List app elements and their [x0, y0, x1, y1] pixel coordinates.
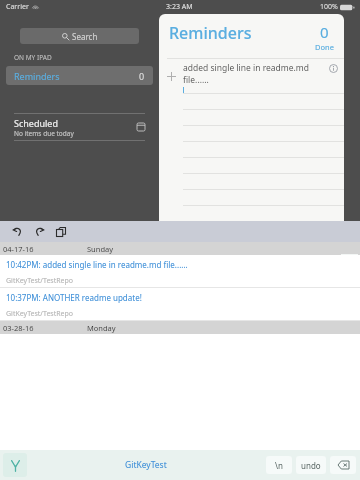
staticText: No items due today: [14, 129, 74, 138]
staticText: 100%: [320, 2, 338, 12]
button[interactable]: undo: [296, 456, 326, 474]
other: Add reminder: [167, 72, 176, 81]
staticText: GitKeyTest: [125, 459, 167, 471]
button[interactable]: Reminders: [6, 66, 153, 85]
staticText: 10:42PM: added single line in readme.md …: [6, 259, 188, 270]
staticText: 03-28-16: [3, 323, 34, 333]
staticText: ON MY IPAD: [14, 53, 52, 62]
other: Scheduled: [137, 123, 145, 131]
button[interactable]: Search: [20, 28, 139, 44]
staticText: Sunday: [87, 244, 114, 254]
button[interactable]: \n: [266, 456, 292, 474]
button[interactable]: Redo: [28, 221, 50, 242]
staticText: 3:23 AM: [166, 2, 193, 12]
button[interactable]: Backspace: [330, 456, 356, 474]
staticText: Carrier: [6, 2, 29, 12]
staticText: undo: [301, 460, 321, 471]
staticText: Done: [315, 42, 334, 52]
staticText: 10:37PM: ANOTHER readme update!: [6, 292, 142, 303]
button[interactable]: 10:42PM: added single line in readme.md …: [0, 255, 360, 274]
button[interactable]: Refresh: [341, 254, 358, 267]
staticText: Search: [72, 31, 98, 42]
staticText: 04-17-16: [3, 244, 34, 254]
staticText: Scheduled: [14, 117, 58, 129]
staticText: Monday: [87, 323, 116, 333]
button[interactable]: 10:37PM: ANOTHER readme update!: [0, 288, 360, 307]
staticText: GitKeyTest/TestRepo: [6, 276, 74, 286]
staticText: Reminders: [14, 70, 60, 82]
button[interactable]: GitKey: [3, 453, 27, 477]
staticText: Reminders: [169, 22, 252, 44]
staticText: 0: [320, 22, 329, 42]
button[interactable]: Scheduled: [0, 114, 159, 140]
staticText: file......: [183, 74, 209, 86]
button[interactable]: Copy: [50, 221, 72, 242]
other: Info: [329, 64, 338, 73]
staticText: GitKeyTest/TestRepo: [6, 309, 74, 319]
button[interactable]: Undo: [6, 221, 28, 242]
staticText: 0: [139, 70, 145, 82]
staticText: \n: [275, 460, 283, 471]
staticText: added single line in readme.md: [183, 62, 310, 74]
